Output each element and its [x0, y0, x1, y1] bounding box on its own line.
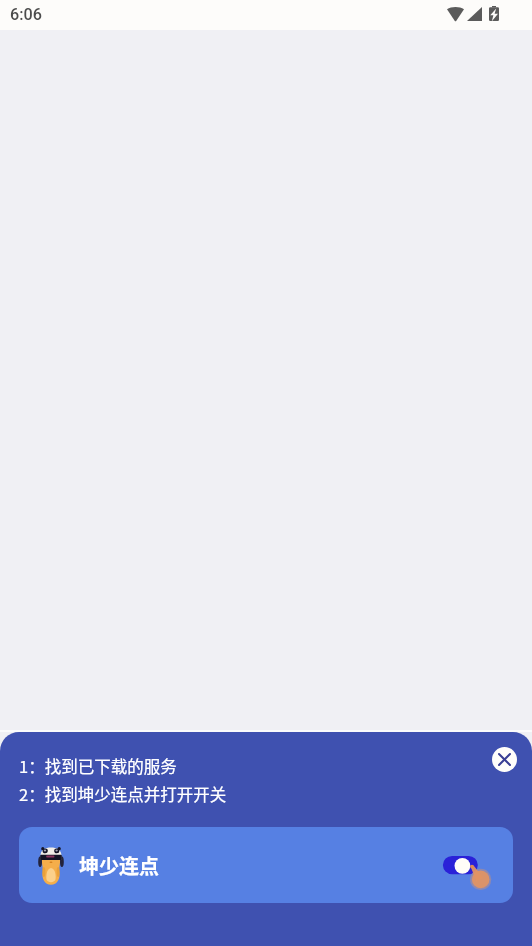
staticText: 6:06 — [10, 5, 42, 24]
button[interactable]: Toggle 坤少连点 — [440, 852, 496, 892]
staticText: 坤少连点 — [79, 851, 159, 880]
staticText: 1：找到已下载的服务 — [19, 754, 177, 778]
button[interactable]: 坤少连点 — [19, 827, 513, 903]
staticText: 2：找到坤少连点并打开开关 — [19, 782, 227, 806]
button[interactable]: Close — [492, 747, 517, 772]
